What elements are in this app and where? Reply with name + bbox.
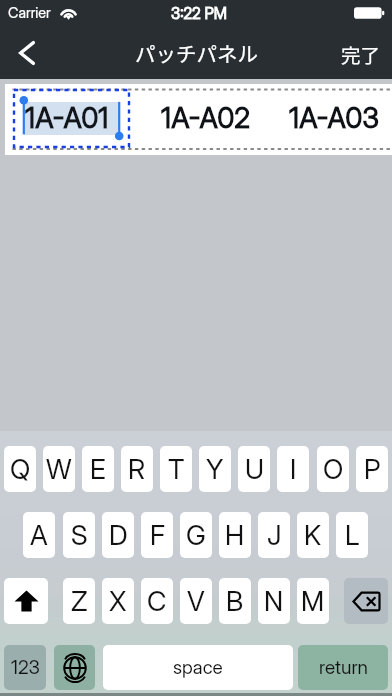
staticText: Y <box>206 453 224 486</box>
button[interactable]: N <box>258 578 290 624</box>
button[interactable]: F <box>141 512 173 558</box>
button[interactable]: H <box>219 512 251 558</box>
staticText: 1A-A03 <box>289 101 380 135</box>
button[interactable]: O <box>317 446 349 492</box>
button[interactable]: Next keyboard <box>54 645 95 690</box>
staticText: H <box>225 519 245 552</box>
button[interactable]: space <box>103 645 293 690</box>
button[interactable]: D <box>102 512 134 558</box>
button[interactable]: P <box>356 446 388 492</box>
button[interactable]: Back <box>0 26 54 79</box>
button[interactable]: M <box>297 578 329 624</box>
button[interactable]: J <box>258 512 290 558</box>
button[interactable]: return <box>298 645 388 690</box>
button[interactable]: E <box>82 446 114 492</box>
button[interactable]: T <box>160 446 192 492</box>
staticText: G <box>186 519 206 552</box>
button[interactable]: R <box>121 446 153 492</box>
button[interactable]: K <box>297 512 329 558</box>
staticText: M <box>301 585 325 618</box>
staticText: R <box>128 453 146 486</box>
button[interactable]: Z <box>63 578 95 624</box>
staticText: J <box>267 519 282 552</box>
button[interactable]: 完了 <box>330 26 392 79</box>
button[interactable]: X <box>102 578 134 624</box>
staticText: 1A-A02 <box>161 101 251 135</box>
staticText: Carrier <box>8 4 51 22</box>
staticText: U <box>245 453 264 486</box>
button[interactable]: Q <box>4 446 36 492</box>
button[interactable]: I <box>277 446 309 492</box>
staticText: 完了 <box>341 40 381 65</box>
staticText: 3:22 PM <box>171 4 227 23</box>
staticText: P <box>364 453 381 486</box>
button[interactable]: A <box>23 512 55 558</box>
staticText: space <box>173 656 223 679</box>
button[interactable]: 1A-A03 <box>277 89 392 148</box>
button[interactable]: 1A-A01 <box>13 89 130 148</box>
staticText: I <box>290 453 297 486</box>
staticText: W <box>46 453 72 486</box>
staticText: F <box>150 519 165 552</box>
staticText: Q <box>10 453 31 486</box>
staticText: 123 <box>11 656 40 679</box>
staticText: C <box>147 585 167 618</box>
staticText: Z <box>71 585 88 618</box>
staticText: L <box>345 519 360 552</box>
button[interactable]: Shift <box>4 578 48 624</box>
button[interactable]: V <box>180 578 212 624</box>
staticText: A <box>30 519 48 552</box>
staticText: K <box>304 519 322 552</box>
staticText: D <box>109 519 128 552</box>
staticText: 1A-A01 <box>25 101 109 135</box>
staticText: X <box>109 585 127 618</box>
button[interactable]: G <box>180 512 212 558</box>
button[interactable]: Backspace <box>344 578 388 624</box>
button[interactable]: L <box>336 512 368 558</box>
button[interactable]: S <box>63 512 95 558</box>
staticText: return <box>319 656 368 679</box>
button[interactable]: C <box>141 578 173 624</box>
staticText: パッチパネル <box>135 38 258 68</box>
staticText: B <box>226 585 244 618</box>
button[interactable]: 123 <box>4 645 46 690</box>
staticText: T <box>168 453 185 486</box>
button[interactable]: W <box>43 446 75 492</box>
staticText: S <box>71 519 88 552</box>
staticText: E <box>90 453 106 486</box>
button[interactable]: Y <box>199 446 231 492</box>
button[interactable]: U <box>238 446 270 492</box>
staticText: V <box>187 585 205 618</box>
staticText: O <box>323 453 344 486</box>
button[interactable]: B <box>219 578 251 624</box>
button[interactable]: 1A-A02 <box>149 89 266 148</box>
staticText: N <box>264 585 284 618</box>
